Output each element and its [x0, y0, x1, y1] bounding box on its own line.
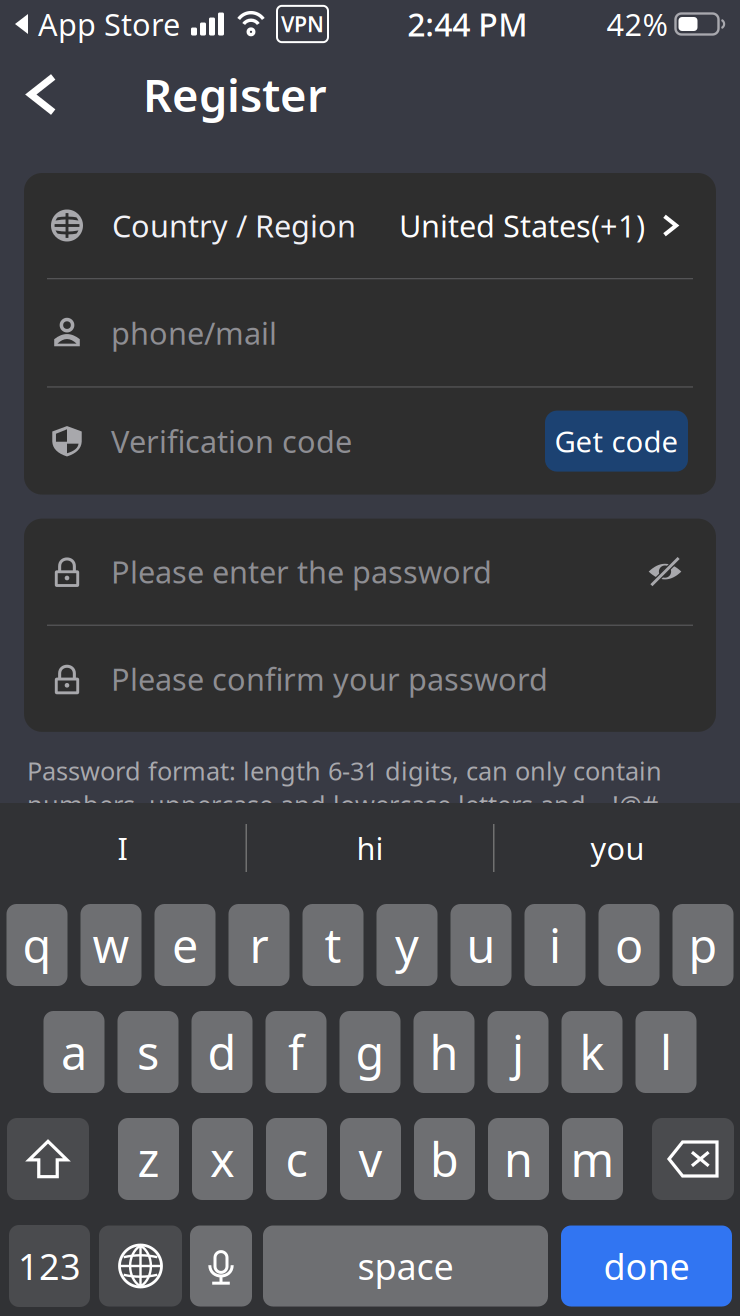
staticText: Please confirm your password [111, 658, 548, 699]
staticText: done [603, 1242, 689, 1290]
button[interactable]: o [598, 904, 659, 986]
button[interactable]: Back [10, 62, 74, 126]
staticText: v [358, 1128, 382, 1190]
button[interactable]: I [0, 803, 245, 893]
staticText: a [61, 1021, 87, 1083]
button[interactable]: hi [247, 803, 493, 893]
staticText: 42% [606, 4, 667, 44]
staticText: hi [356, 828, 383, 868]
staticText: n [504, 1128, 533, 1190]
staticText: h [429, 1021, 458, 1083]
button[interactable]: w [80, 904, 141, 986]
button[interactable]: 123 [9, 1225, 90, 1307]
staticText: y [395, 914, 419, 976]
staticText: Password format: length 6-31 digits, can… [27, 754, 662, 821]
staticText: r [249, 914, 268, 976]
staticText: space [357, 1242, 453, 1290]
button[interactable]: p [672, 904, 733, 986]
staticText: Get code [554, 422, 678, 461]
staticText: phone/mail [111, 312, 277, 353]
staticText: you [590, 828, 644, 868]
staticText: g [355, 1021, 384, 1083]
button[interactable]: j [487, 1011, 548, 1093]
button[interactable]: done [561, 1225, 732, 1306]
button[interactable]: u [450, 904, 511, 986]
staticText: VPN [281, 10, 324, 38]
staticText: Country / Region [112, 205, 356, 246]
button[interactable]: e [154, 904, 215, 986]
button[interactable]: z [118, 1118, 179, 1200]
button[interactable]: v [340, 1118, 401, 1200]
button[interactable]: c [266, 1118, 327, 1200]
staticText: x [210, 1128, 235, 1190]
staticText: United States(+1) [399, 205, 645, 246]
button[interactable]: t [302, 904, 363, 986]
staticText: m [570, 1128, 614, 1190]
staticText: w [92, 914, 129, 976]
button[interactable]: space [263, 1225, 548, 1306]
staticText: q [22, 914, 51, 976]
button[interactable]: d [191, 1011, 252, 1093]
button[interactable]: n [488, 1118, 549, 1200]
button[interactable]: Next keyboard [99, 1225, 182, 1306]
button[interactable]: you [494, 803, 740, 893]
staticText: Register [143, 64, 327, 125]
button[interactable]: i [524, 904, 585, 986]
button[interactable]: b [414, 1118, 475, 1200]
button[interactable]: s [117, 1011, 178, 1093]
staticText: t [324, 914, 341, 976]
staticText: d [207, 1021, 236, 1083]
staticText: Please enter the password [111, 551, 492, 592]
button[interactable]: m [562, 1118, 623, 1200]
staticText: 123 [18, 1242, 81, 1290]
staticText: o [615, 914, 643, 976]
staticText: I [117, 828, 127, 868]
button[interactable]: f [265, 1011, 326, 1093]
staticText: App Store [30, 4, 180, 44]
button[interactable]: r [228, 904, 289, 986]
button[interactable]: Delete [652, 1118, 734, 1200]
button[interactable]: k [561, 1011, 622, 1093]
button[interactable]: Get code [545, 411, 688, 472]
staticText: e [172, 914, 198, 976]
button[interactable]: g [339, 1011, 400, 1093]
button[interactable]: Shift [7, 1118, 89, 1200]
staticText: l [660, 1021, 672, 1083]
button[interactable]: y [376, 904, 437, 986]
staticText: z [137, 1128, 159, 1190]
staticText: c [285, 1128, 307, 1190]
button[interactable]: h [413, 1011, 474, 1093]
staticText: s [137, 1021, 159, 1083]
staticText: k [579, 1021, 604, 1083]
button[interactable]: q [6, 904, 67, 986]
staticText: f [288, 1021, 304, 1083]
button[interactable]: Show password [641, 548, 689, 596]
button[interactable]: Dictation [190, 1225, 252, 1306]
staticText: j [512, 1021, 524, 1083]
staticText: Verification code [111, 421, 352, 461]
button[interactable]: Country / Region [24, 173, 716, 278]
button[interactable]: x [192, 1118, 253, 1200]
staticText: i [549, 914, 561, 976]
staticText: 2:44 PM [407, 3, 527, 45]
staticText: b [430, 1128, 459, 1190]
staticText: u [466, 914, 495, 976]
staticText: p [688, 914, 717, 976]
button[interactable]: a [43, 1011, 104, 1093]
button[interactable]: l [635, 1011, 696, 1093]
